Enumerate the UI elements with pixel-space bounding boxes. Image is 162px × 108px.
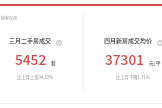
staticText: 链家在线…	[1, 15, 21, 21]
staticText: 比上月下降1.71%	[116, 74, 150, 80]
staticText: 四月新房成交均价	[104, 36, 153, 45]
button[interactable]: 四月新房成交均价	[104, 36, 162, 80]
staticText: 5452	[15, 49, 47, 69]
button[interactable]: 三月二手房成交	[9, 36, 61, 80]
staticText: 套	[51, 59, 56, 66]
staticText: 元/平	[149, 59, 161, 66]
staticText: 三月二手房成交	[9, 36, 52, 45]
staticText: 37301	[105, 49, 145, 69]
staticText: 比上月上涨34.52%	[17, 74, 54, 80]
